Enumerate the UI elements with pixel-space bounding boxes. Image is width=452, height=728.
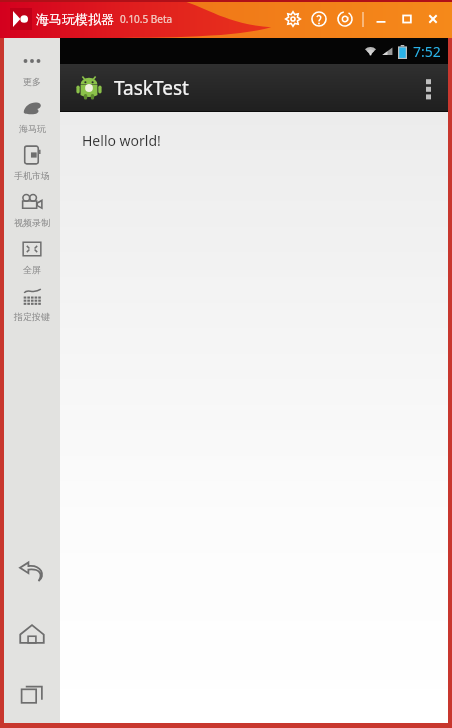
button[interactable]: Recents (4, 665, 60, 723)
staticText: 7:52 (413, 42, 441, 61)
staticText: 全屏 (23, 264, 41, 275)
button[interactable]: 海马玩 (4, 95, 60, 142)
staticText: 海马玩 (19, 123, 46, 134)
button[interactable]: 视频录制 (4, 189, 60, 236)
staticText: Hello world! (82, 131, 161, 150)
button[interactable]: Settings (282, 8, 304, 30)
staticText: 更多 (23, 76, 41, 87)
staticText: 海马玩模拟器 (36, 11, 114, 27)
staticText: 0.10.5 Beta (120, 12, 173, 26)
button[interactable]: Help (308, 8, 330, 30)
button[interactable]: 手机市场 (4, 142, 60, 189)
button[interactable]: Close (422, 8, 444, 30)
button[interactable]: Account (334, 8, 356, 30)
staticText: 指定按键 (14, 311, 50, 322)
staticText: 手机市场 (14, 170, 50, 181)
button[interactable]: Maximize (396, 8, 418, 30)
button[interactable]: Back (4, 541, 60, 603)
staticText: TaskTest (114, 75, 189, 101)
button[interactable]: Minimize (370, 8, 392, 30)
staticText: 视频录制 (14, 217, 50, 228)
button[interactable]: Droid4X logo (10, 8, 32, 30)
button[interactable]: More options (408, 64, 448, 111)
button[interactable]: 指定按键 (4, 283, 60, 330)
button[interactable]: Home (4, 603, 60, 665)
button[interactable]: 全屏 (4, 236, 60, 283)
button[interactable]: 更多 (4, 48, 60, 95)
